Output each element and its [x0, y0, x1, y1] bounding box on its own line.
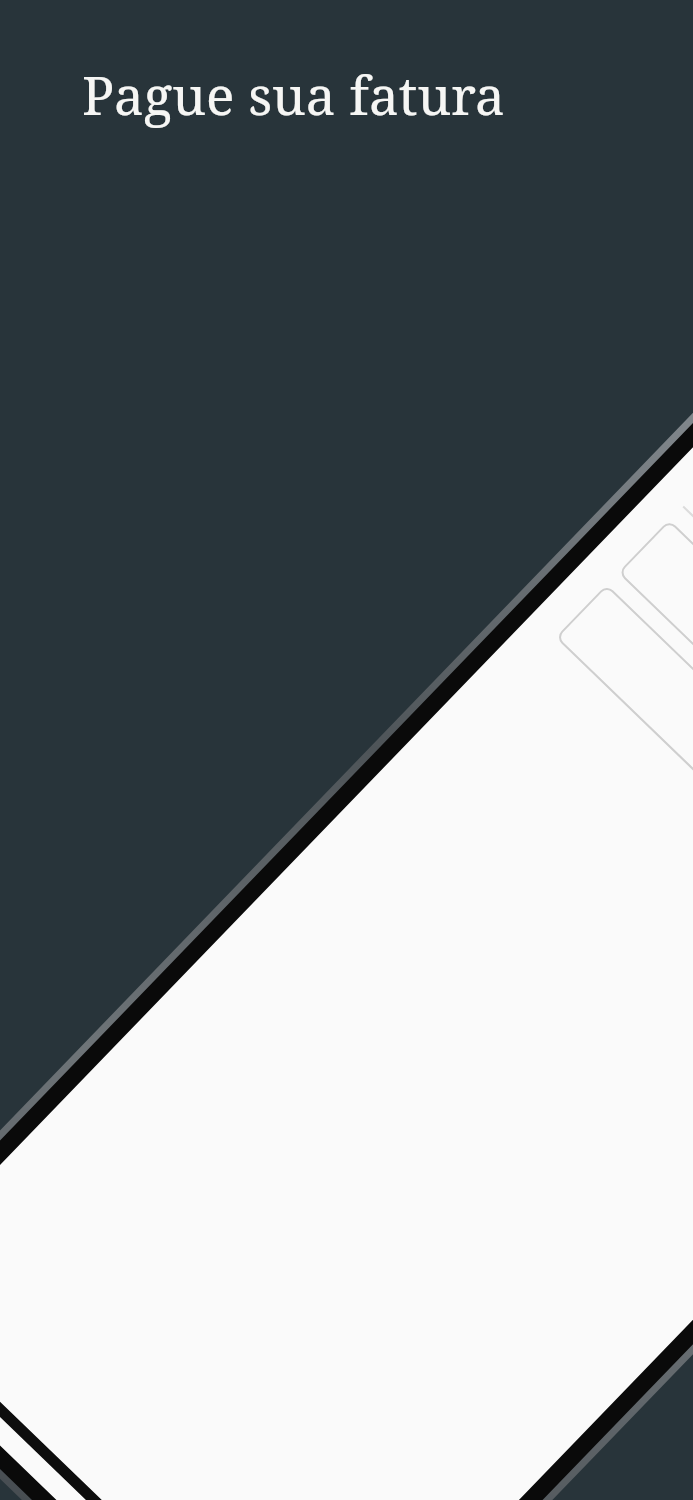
button[interactable]: Fatura no celular — [0, 0, 693, 1500]
